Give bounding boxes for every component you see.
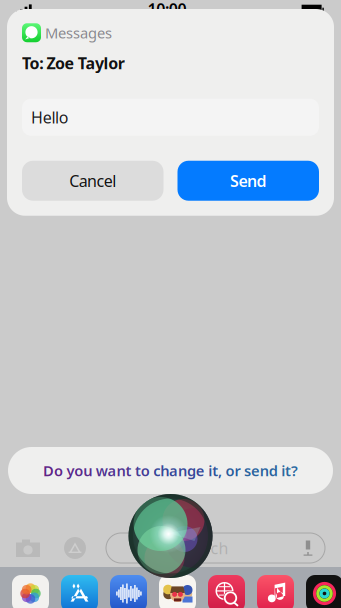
staticText: Hello — [31, 107, 69, 128]
button[interactable]: Search — [106, 533, 325, 563]
button[interactable]: Photos Library — [159, 575, 196, 608]
staticText: Do — [43, 461, 63, 480]
staticText: send — [244, 461, 278, 480]
button[interactable]: Voice Memos — [110, 575, 147, 608]
button[interactable]: Search App — [208, 575, 245, 608]
staticText: change — [153, 461, 205, 480]
staticText: to — [135, 461, 150, 480]
staticText: Search — [177, 537, 228, 559]
staticText: Cancel — [69, 170, 116, 191]
staticText: you — [66, 461, 92, 480]
button[interactable]: Camera — [16, 537, 40, 559]
staticText: Send — [230, 170, 266, 191]
button[interactable]: Music — [257, 575, 294, 608]
staticText: or — [226, 461, 240, 480]
button[interactable]: Fitness — [306, 575, 341, 608]
button[interactable]: Photos — [12, 575, 49, 608]
button[interactable]: App Store — [61, 575, 98, 608]
staticText: 10:00 — [147, 0, 187, 20]
button[interactable]: Send — [177, 161, 319, 201]
button[interactable]: Cancel — [22, 161, 163, 201]
button[interactable]: Do — [8, 447, 333, 494]
button[interactable]: App Library — [64, 537, 86, 559]
staticText: want — [96, 461, 131, 480]
staticText: it, — [208, 461, 222, 480]
staticText: it? — [281, 461, 298, 480]
staticText: Messages — [45, 23, 112, 42]
staticText: To: Zoe Taylor — [22, 52, 125, 74]
